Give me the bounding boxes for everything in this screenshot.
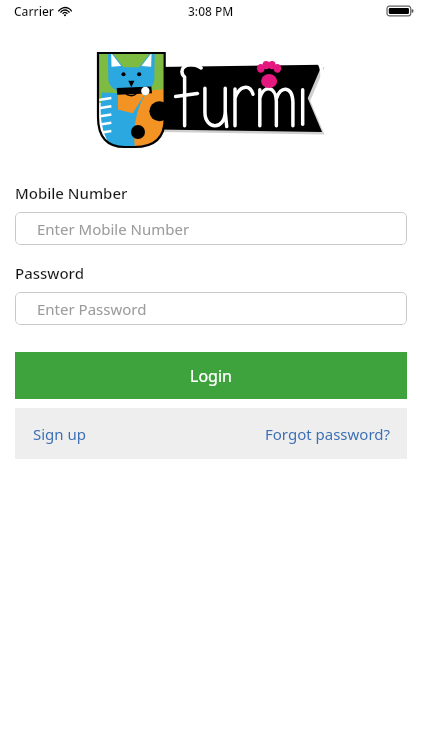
button[interactable]: Sign up	[15, 408, 104, 459]
button[interactable]: Enter Mobile Number	[15, 212, 407, 245]
staticText: 3:08 PM	[188, 3, 234, 19]
staticText: Mobile Number	[15, 183, 128, 203]
staticText: Enter Password	[37, 299, 147, 319]
staticText: Sign up	[33, 424, 86, 444]
staticText: Carrier	[14, 3, 54, 19]
staticText: Password	[15, 263, 84, 283]
other: Furmily logo	[98, 53, 324, 147]
staticText: Forgot password?	[265, 424, 391, 444]
button[interactable]: Forgot password?	[249, 408, 407, 459]
staticText: Enter Mobile Number	[37, 219, 190, 239]
button[interactable]: Login	[15, 352, 407, 399]
button[interactable]: Enter Password	[15, 292, 407, 325]
staticText: Login	[190, 365, 232, 387]
